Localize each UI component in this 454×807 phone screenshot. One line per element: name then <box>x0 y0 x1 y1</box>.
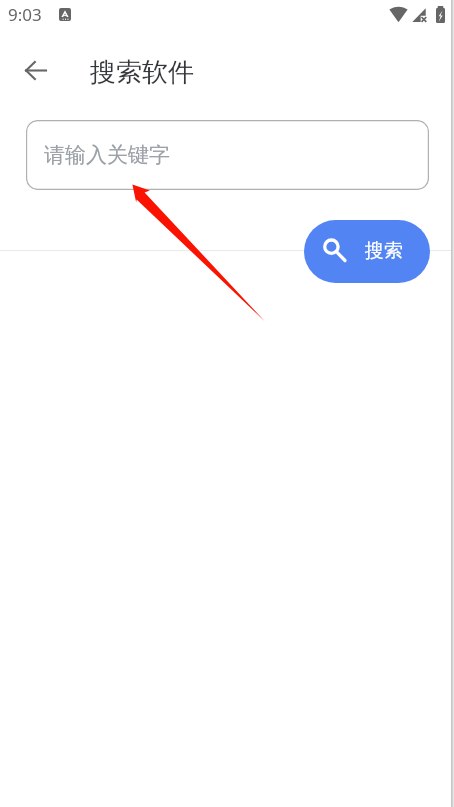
button[interactable]: Back <box>17 52 54 89</box>
staticText: 9:03 <box>8 3 42 26</box>
button[interactable]: 请输入关键字 <box>26 120 429 190</box>
button[interactable]: 搜索 <box>304 220 430 283</box>
staticText: 搜索 <box>365 239 403 263</box>
staticText: 请输入关键字 <box>44 142 170 168</box>
staticText: 搜索软件 <box>90 56 194 89</box>
